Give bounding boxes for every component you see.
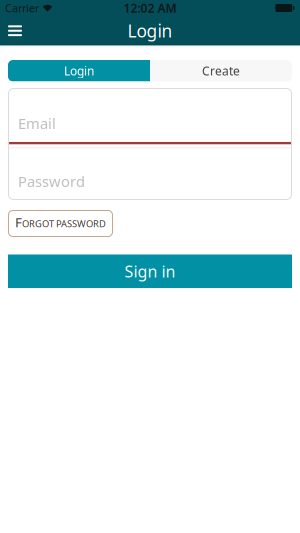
staticText: Create bbox=[202, 63, 240, 79]
staticText: Carrier bbox=[5, 1, 39, 15]
staticText: Sign in bbox=[124, 261, 175, 282]
button[interactable]: Password bbox=[8, 148, 292, 200]
button[interactable]: Create bbox=[150, 60, 292, 81]
staticText: Password bbox=[18, 171, 85, 191]
staticText: Email bbox=[18, 113, 56, 133]
button[interactable]: Menu bbox=[0, 19, 32, 42]
button[interactable]: FORGOT PASSWORD bbox=[8, 210, 113, 237]
button[interactable]: Email bbox=[8, 88, 292, 142]
staticText: Login bbox=[127, 19, 172, 42]
staticText: Login bbox=[64, 63, 94, 79]
button[interactable]: Sign in bbox=[8, 254, 292, 288]
staticText: FORGOT PASSWORD bbox=[15, 213, 106, 231]
staticText: 12:02 AM bbox=[123, 0, 176, 16]
button[interactable]: Login bbox=[8, 60, 150, 81]
